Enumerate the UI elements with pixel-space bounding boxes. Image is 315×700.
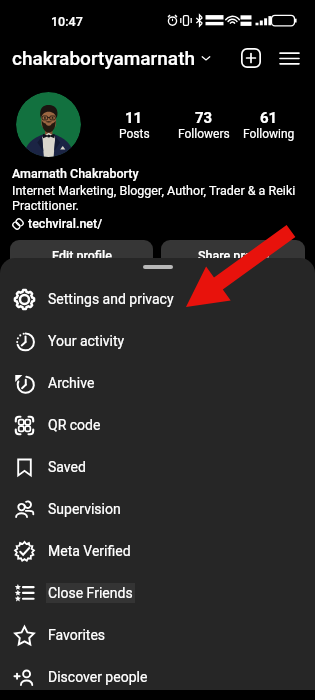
button[interactable]: Menu <box>273 42 305 74</box>
staticText: Followers <box>178 127 230 141</box>
staticText: Edit profile <box>52 248 112 263</box>
staticText: Favorites <box>48 627 106 643</box>
button[interactable]: QR code <box>0 404 315 446</box>
staticText: QR code <box>48 417 101 433</box>
button[interactable]: 73 <box>170 109 238 141</box>
staticText: chakrabortyamarnath <box>12 47 196 69</box>
staticText: Posts <box>119 127 150 141</box>
staticText: Amarnath Chakraborty <box>12 166 139 181</box>
button[interactable]: Close Friends <box>0 572 315 614</box>
staticText: Discover people <box>48 669 148 685</box>
staticText: 11 <box>125 109 143 127</box>
button[interactable]: Supervision <box>0 488 315 530</box>
staticText: techviral.net/ <box>28 216 103 231</box>
button[interactable]: 61 <box>238 109 300 141</box>
staticText: 73 <box>195 109 213 127</box>
button[interactable]: New post <box>235 42 267 74</box>
button[interactable]: 11 <box>98 109 170 141</box>
staticText: Archive <box>48 375 95 391</box>
staticText: 10:47 <box>51 14 83 29</box>
button[interactable]: techviral.net/ <box>12 216 103 231</box>
button[interactable]: Favorites <box>0 614 315 656</box>
staticText: Share profile <box>198 248 269 263</box>
staticText: Supervision <box>48 501 121 517</box>
staticText: Saved <box>48 459 86 475</box>
staticText: Settings and privacy <box>48 291 174 307</box>
button[interactable]: Archive <box>0 362 315 404</box>
button[interactable]: Meta Verified <box>0 530 315 572</box>
button[interactable]: Your activity <box>0 320 315 362</box>
staticText: Internet Marketing, Blogger, Author, Tra… <box>12 183 296 213</box>
button[interactable]: Share profile <box>161 240 305 271</box>
staticText: Close Friends <box>48 585 133 601</box>
staticText: 61 <box>260 109 278 127</box>
button[interactable]: Edit profile <box>10 240 153 271</box>
button[interactable]: Saved <box>0 446 315 488</box>
button[interactable]: Settings and privacy <box>0 278 315 320</box>
staticText: Following <box>243 127 295 141</box>
button[interactable]: chakrabortyamarnath <box>12 47 211 69</box>
staticText: Your activity <box>48 333 125 349</box>
button[interactable]: Discover people <box>0 656 315 698</box>
staticText: Meta Verified <box>48 543 131 559</box>
button[interactable]: Profile photo <box>16 92 81 157</box>
